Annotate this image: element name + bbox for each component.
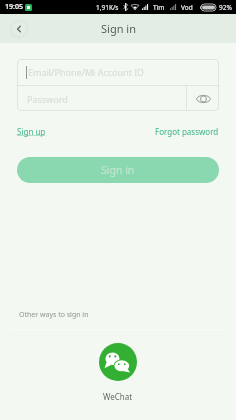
button[interactable]: Show password — [187, 86, 219, 111]
staticText: 92% — [219, 3, 232, 12]
staticText: Vod — [181, 3, 193, 12]
button[interactable]: Forgot password — [155, 126, 219, 137]
staticText: WeChat — [103, 391, 133, 402]
button[interactable]: WeChat — [99, 343, 137, 402]
button[interactable]: Sign in — [17, 157, 219, 183]
button[interactable]: Email/Phone/Mi Account ID — [17, 59, 219, 85]
staticText: Other ways to sign in — [19, 310, 89, 320]
staticText: Password — [27, 93, 68, 105]
button[interactable]: Password — [17, 86, 186, 111]
staticText: 19:05 — [5, 2, 23, 12]
button[interactable]: Back — [10, 20, 28, 38]
staticText: Sign in — [101, 163, 135, 177]
staticText: Email/Phone/Mi Account ID — [28, 66, 144, 78]
button[interactable]: Sign up — [17, 126, 46, 137]
staticText: Tim — [153, 3, 165, 12]
staticText: Sign in — [101, 21, 136, 36]
staticText: 1,91K/s — [96, 3, 119, 12]
